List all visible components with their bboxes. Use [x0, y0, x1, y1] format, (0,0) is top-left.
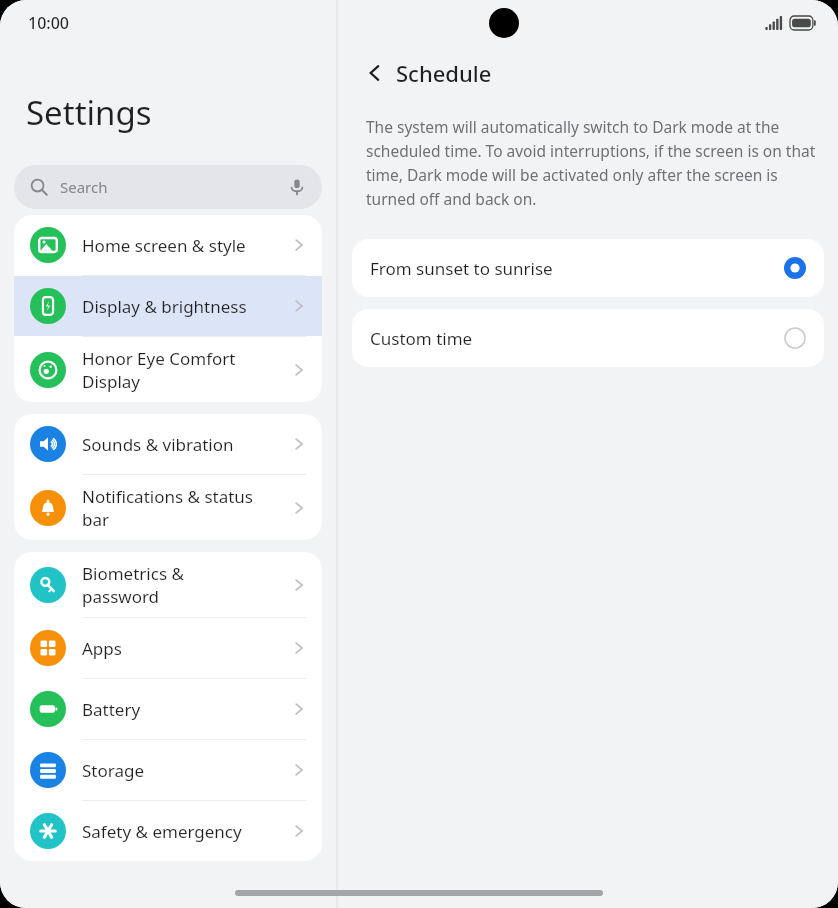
other: Voice search: [288, 178, 306, 196]
button[interactable]: Biometrics & password: [14, 552, 322, 617]
button[interactable]: Search: [14, 165, 322, 209]
button[interactable]: Custom time: [352, 309, 824, 367]
staticText: Schedule: [396, 58, 492, 88]
button[interactable]: Safety & emergency: [14, 801, 322, 861]
button[interactable]: Storage: [14, 740, 322, 800]
button[interactable]: Notifications & status bar: [14, 475, 322, 540]
staticText: Storage: [82, 759, 292, 782]
other: Back: [366, 64, 384, 82]
button[interactable]: Display & brightness: [14, 276, 322, 336]
button[interactable]: From sunset to sunrise: [352, 239, 824, 297]
staticText: Biometrics & password: [82, 562, 292, 608]
staticText: Safety & emergency: [82, 820, 292, 843]
staticText: The system will automatically switch to …: [366, 116, 816, 209]
staticText: Sounds & vibration: [82, 433, 292, 456]
staticText: 10:00: [28, 12, 69, 34]
staticText: Settings: [26, 90, 152, 135]
staticText: From sunset to sunrise: [370, 257, 784, 280]
button[interactable]: Honor Eye Comfort Display: [14, 337, 322, 402]
staticText: Home screen & style: [82, 234, 292, 257]
button[interactable]: Home screen & style: [14, 215, 322, 275]
staticText: Battery: [82, 698, 292, 721]
staticText: Custom time: [370, 327, 784, 350]
button[interactable]: Battery: [14, 679, 322, 739]
staticText: Notifications & status bar: [82, 485, 292, 531]
staticText: Honor Eye Comfort Display: [82, 347, 292, 393]
button[interactable]: Sounds & vibration: [14, 414, 322, 474]
staticText: Display & brightness: [82, 295, 292, 318]
button[interactable]: Back: [366, 58, 492, 88]
staticText: Apps: [82, 637, 292, 660]
staticText: Search: [60, 177, 108, 197]
button[interactable]: Apps: [14, 618, 322, 678]
